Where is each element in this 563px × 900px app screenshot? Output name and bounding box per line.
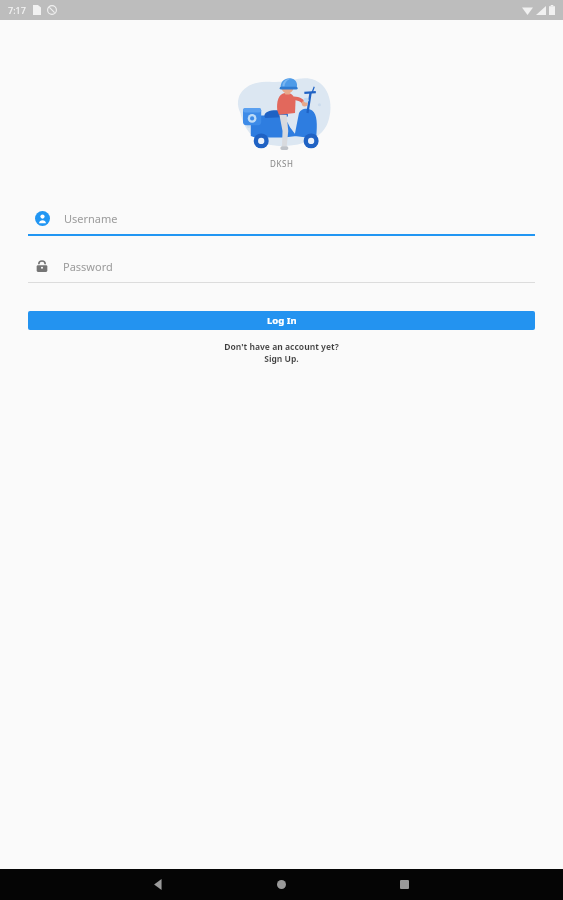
- staticText: Password: [63, 259, 113, 274]
- button[interactable]: Username: [28, 202, 535, 236]
- staticText: DKSH: [270, 158, 294, 169]
- button[interactable]: Home: [264, 869, 298, 900]
- staticText: Username: [64, 211, 118, 226]
- button[interactable]: Recent apps: [387, 869, 421, 900]
- staticText: Don't have an account yet?: [224, 341, 339, 353]
- button[interactable]: Back: [141, 869, 175, 900]
- staticText: 7:17: [8, 4, 26, 16]
- staticText: Sign Up.: [264, 353, 299, 365]
- button[interactable]: Log In: [28, 311, 535, 330]
- staticText: Log In: [267, 314, 297, 327]
- button[interactable]: Don't have an account yet?: [212, 340, 351, 366]
- button[interactable]: Password: [28, 250, 535, 283]
